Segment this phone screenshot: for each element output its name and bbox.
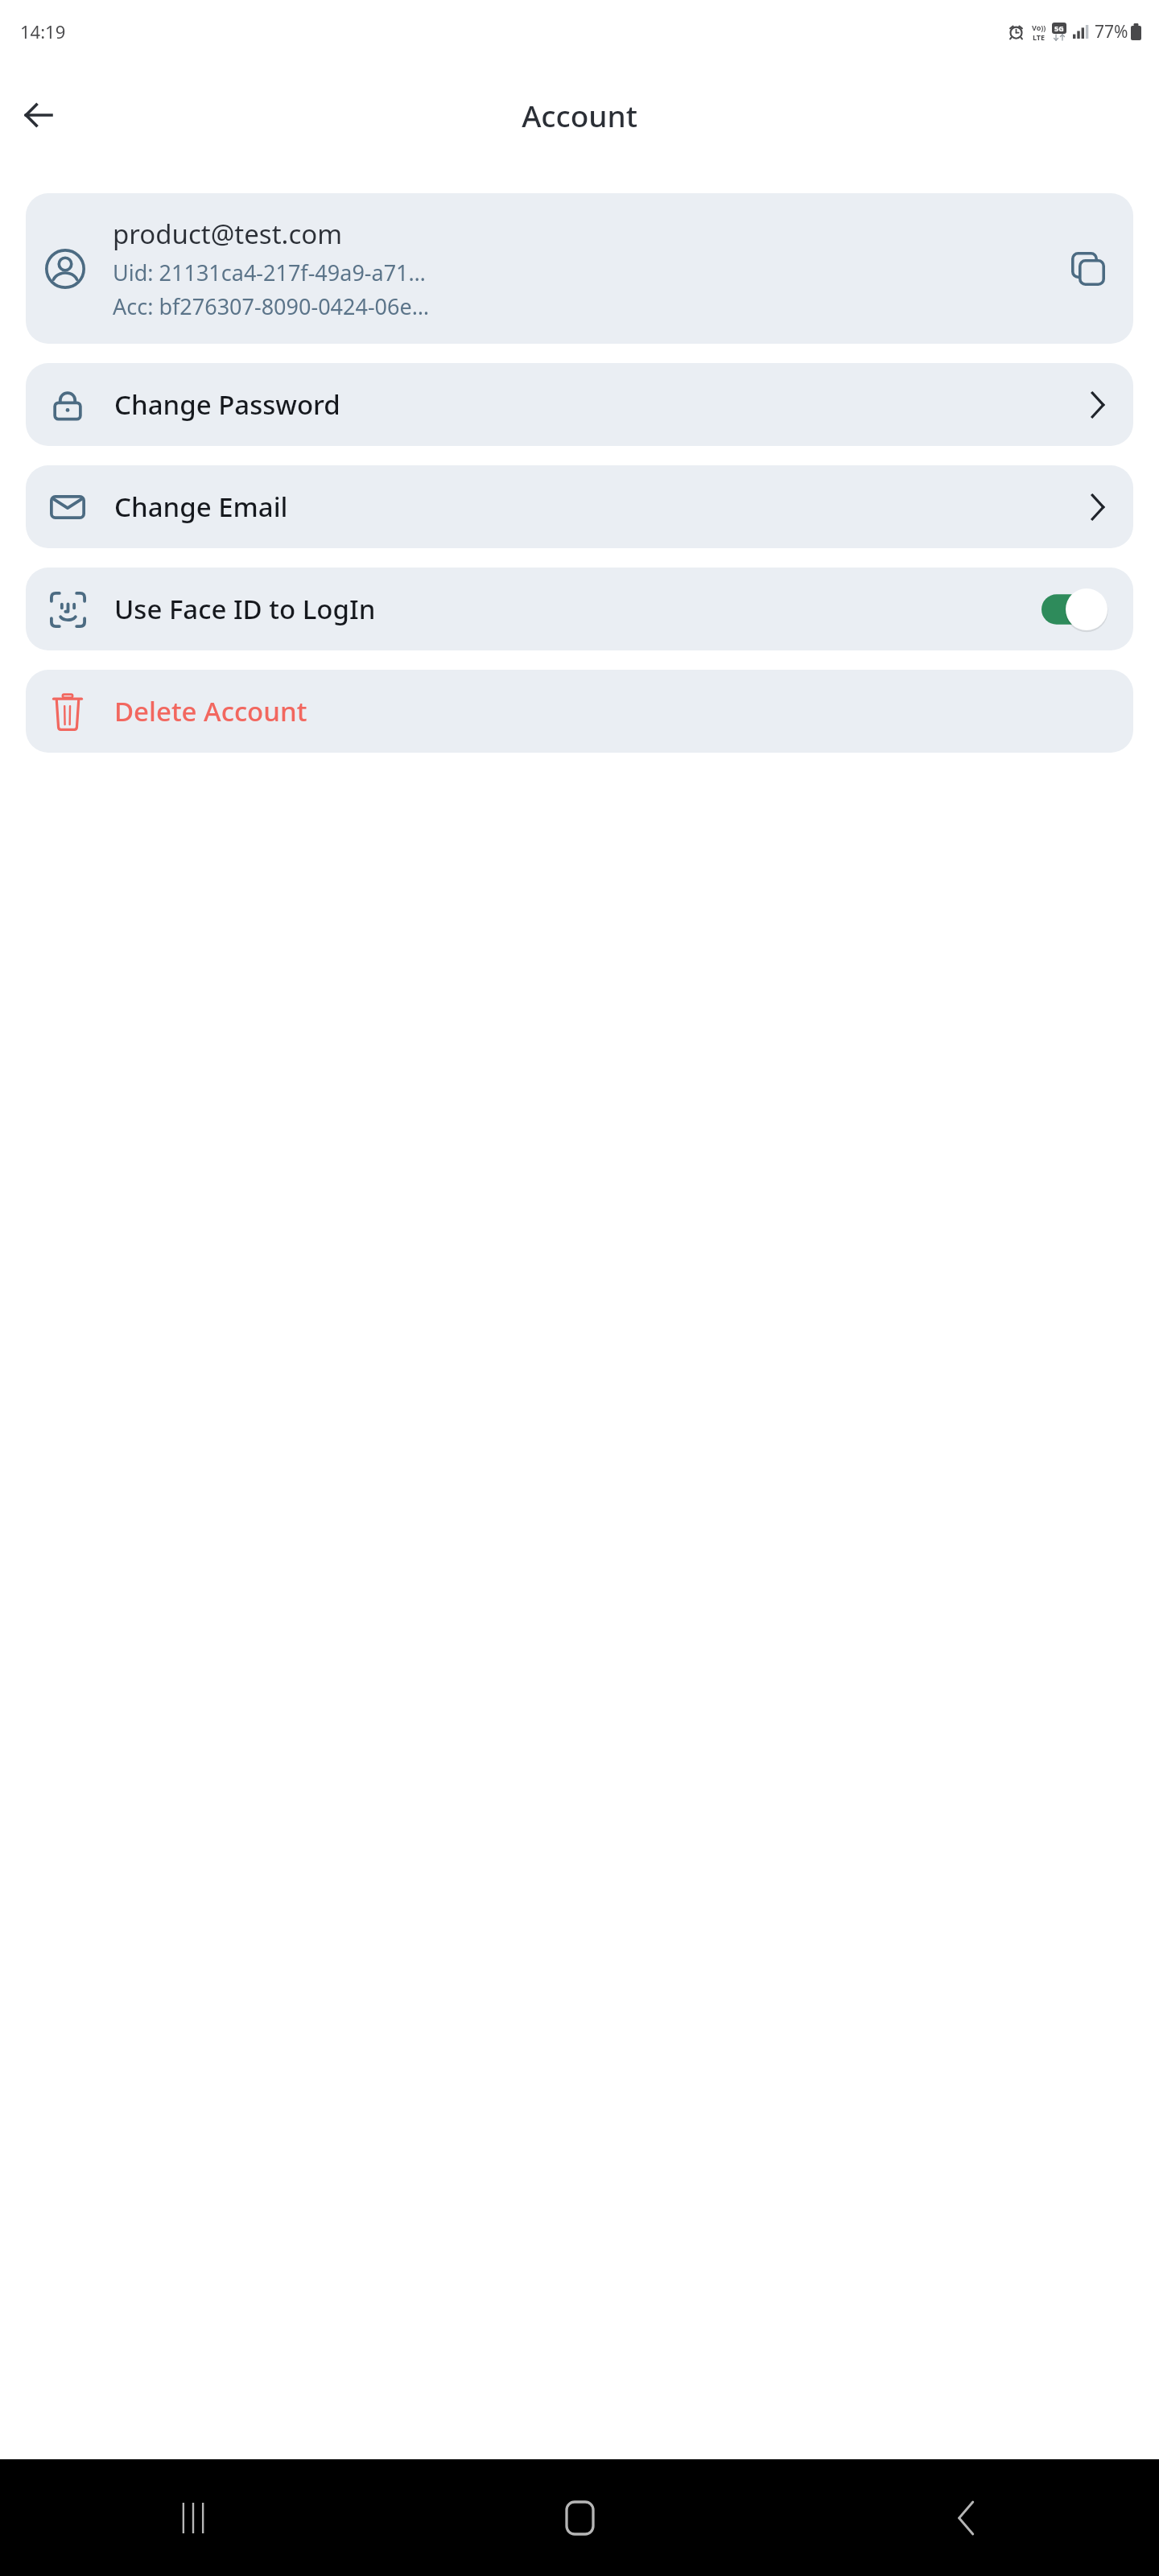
button[interactable]: Copy <box>1062 243 1114 295</box>
button[interactable]: Use Face ID to LogIn <box>26 568 1133 650</box>
staticText: 5G <box>1054 23 1064 33</box>
staticText: product@test.com <box>113 216 343 252</box>
button[interactable]: Delete Account <box>26 670 1133 753</box>
staticText: LTE <box>1033 32 1046 42</box>
button[interactable]: Change Password <box>26 363 1133 446</box>
button[interactable]: Home <box>386 2459 773 2576</box>
staticText: 77% <box>1095 20 1128 43</box>
staticText: Acc: bf276307-8090-0424-06e… <box>113 291 430 321</box>
button[interactable]: Back <box>10 86 68 144</box>
staticText: Vo)) <box>1032 23 1046 32</box>
staticText: Use Face ID to LogIn <box>114 591 1041 627</box>
staticText: Uid: 21131ca4-217f-49a9-a71… <box>113 258 426 287</box>
button[interactable]: Use Face ID to LogIn toggle <box>1041 588 1107 630</box>
staticText: Account <box>522 95 637 135</box>
staticText: Delete Account <box>114 693 1106 729</box>
button[interactable]: Back <box>773 2459 1159 2576</box>
staticText: Change Email <box>114 489 1090 525</box>
button[interactable]: Change Email <box>26 465 1133 548</box>
staticText: Change Password <box>114 386 1090 423</box>
staticText: 14:19 <box>20 19 66 43</box>
button[interactable]: Recents <box>0 2459 386 2576</box>
button[interactable]: product@test.com <box>26 193 1133 344</box>
